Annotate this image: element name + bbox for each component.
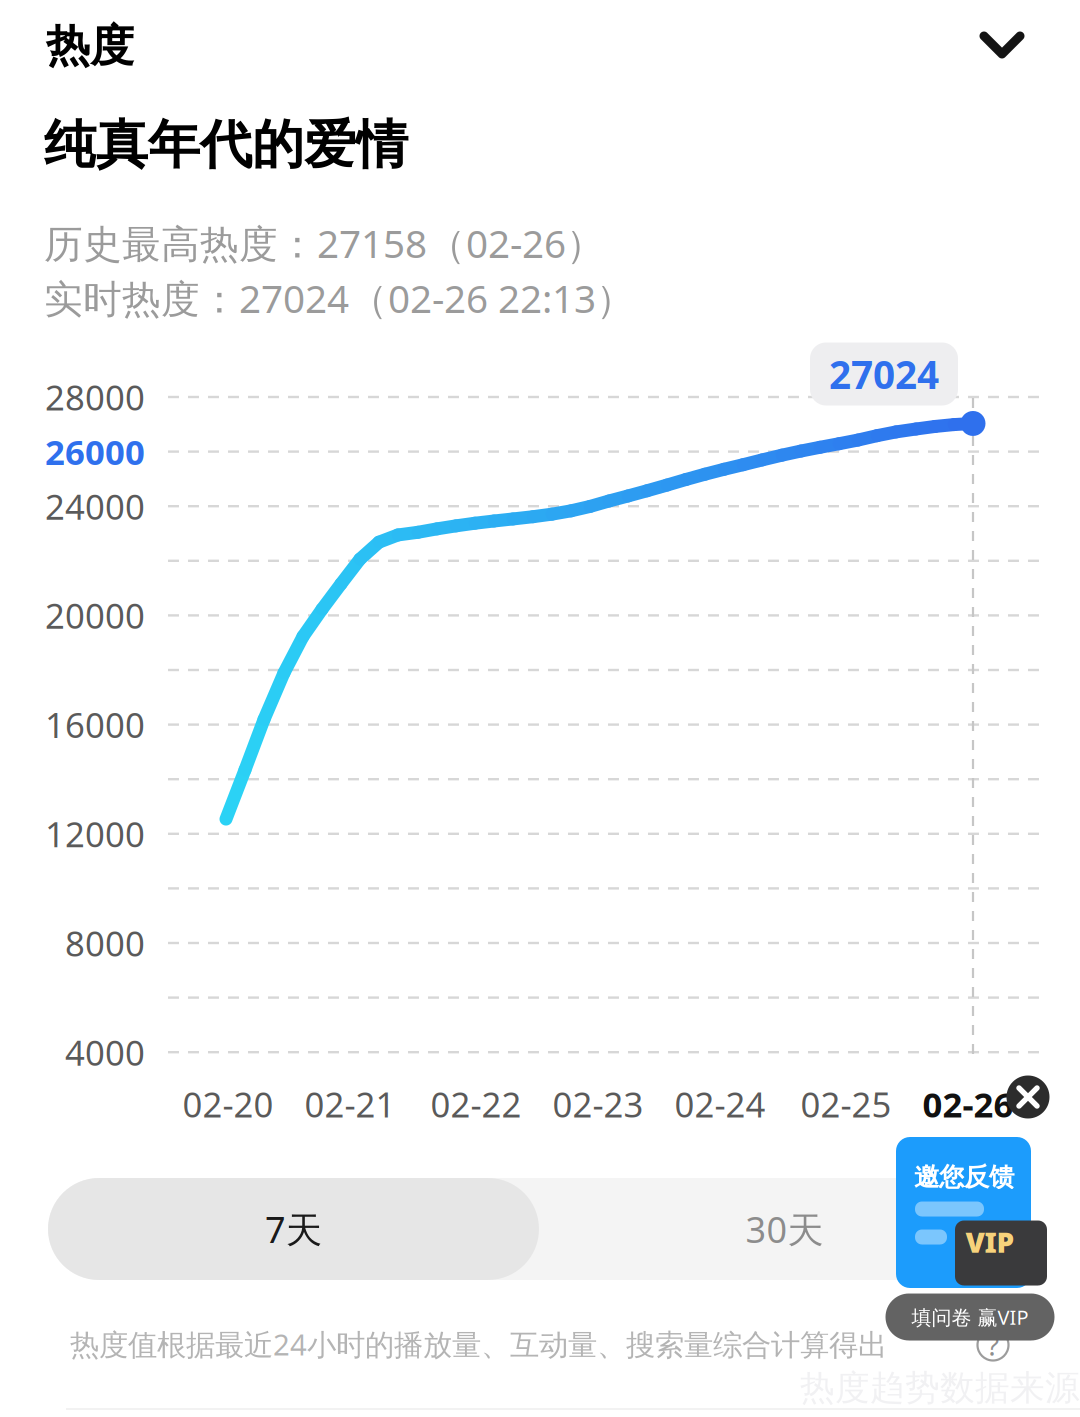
staticText: 填问卷 赢VIP	[911, 1304, 1028, 1330]
staticText: 02-26	[922, 1081, 1013, 1127]
staticText: 26000	[45, 429, 145, 475]
staticText: 28000	[45, 374, 145, 420]
staticText: 02-20	[182, 1081, 273, 1127]
staticText: VIP	[965, 1223, 1014, 1261]
staticText: 热度值根据最近24小时的播放量、互动量、搜索量综合计算得出	[70, 1324, 887, 1363]
staticText: 8000	[65, 920, 145, 966]
staticText: 16000	[45, 702, 145, 748]
staticText: 02-22	[430, 1081, 521, 1127]
staticText: 02-25	[800, 1081, 891, 1127]
staticText: 邀您反馈	[914, 1161, 1014, 1192]
button[interactable]: 填问卷 赢VIP 广告	[0, 0, 1080, 1417]
staticText: 02-21	[304, 1081, 395, 1127]
staticText: 27024	[829, 348, 939, 400]
button[interactable]: 30天	[539, 1178, 1030, 1280]
staticText: 12000	[45, 811, 145, 857]
staticText: 热度	[46, 19, 134, 73]
staticText: 30天	[745, 1205, 823, 1253]
staticText: 4000	[65, 1029, 145, 1075]
button[interactable]: 收起	[967, 15, 1037, 75]
staticText: 02-24	[674, 1081, 765, 1127]
button[interactable]: 说明	[970, 1322, 1016, 1368]
staticText: 热度趋势数据来源	[800, 1367, 1080, 1409]
staticText: 24000	[45, 483, 145, 529]
staticText: 纯真年代的爱情	[44, 113, 408, 177]
staticText: ?	[987, 1326, 999, 1364]
button[interactable]: 关闭	[998, 1067, 1058, 1127]
staticText: 02-23	[552, 1081, 643, 1127]
staticText: 20000	[45, 592, 145, 638]
staticText: 历史最高热度：27158（02-26）	[44, 217, 605, 269]
button[interactable]: 7天	[48, 1178, 539, 1280]
staticText: 7天	[265, 1205, 322, 1253]
staticText: 实时热度：27024（02-26 22:13）	[44, 272, 635, 324]
